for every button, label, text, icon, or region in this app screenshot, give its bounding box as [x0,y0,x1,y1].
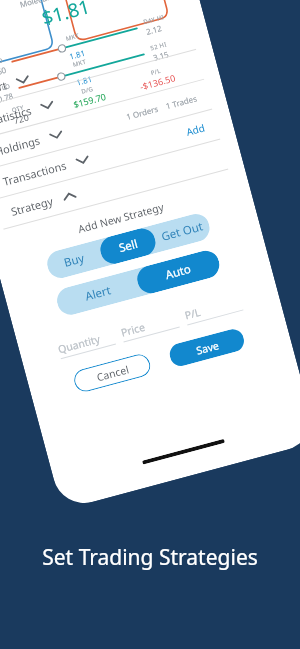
button[interactable]: Buy [44,240,104,281]
button[interactable]: Holdings [0,80,212,169]
staticText: 0.78 [0,90,14,105]
button[interactable]: Auto [134,247,222,296]
staticText: Alert [83,282,113,304]
staticText: Statistics [0,103,33,129]
staticText: -$136.50 [138,71,177,92]
button[interactable]: Statistics [0,50,204,139]
staticText: DAY LO [0,56,4,70]
staticText: 1 Trades [164,92,198,111]
staticText: Moleculin Biotech, Inc. [0,0,175,29]
staticText: $159.70 [72,90,108,110]
staticText: 1.81 [12,32,142,76]
staticText: Get Out [160,218,205,245]
staticText: Cancel [95,362,131,384]
button[interactable]: Sell [97,225,158,267]
staticText: Holdings [0,132,42,159]
staticText: D/G [80,85,94,96]
staticText: Sell [117,236,140,256]
staticText: 1 Orders [125,103,160,122]
staticText: P/L [183,305,202,322]
staticText: Add [185,120,207,139]
button[interactable]: Strategy [0,139,228,229]
staticText: Transactions [1,157,69,189]
staticText: Buy [62,250,86,271]
staticText: DAY HI [142,13,165,26]
staticText: 52 LO [0,82,12,95]
staticText: 1.81 [19,58,149,102]
button[interactable]: Transactions [0,110,220,199]
staticText: MKT [15,43,144,84]
button[interactable]: Get Out [151,211,213,252]
button[interactable]: Alert [54,269,141,318]
staticText: $1.81 [0,0,182,55]
staticText: 52 HI [149,40,168,52]
staticText: Quantity [56,332,102,356]
staticText: Strategy [9,193,55,219]
staticText: Set Trading Strategies [0,543,300,572]
button[interactable]: Save [167,327,247,369]
staticText: Chart [0,77,9,99]
button[interactable]: Cancel [72,352,153,394]
staticText: Price [119,320,147,340]
staticText: MKT [8,16,137,58]
staticText: 3.15 [152,48,170,63]
staticText: P/L [150,67,162,77]
button[interactable]: Chart [0,20,196,109]
staticText: Auto [164,261,193,283]
staticText: Save [195,338,220,358]
staticText: QTY [11,103,25,114]
staticText: 2.12 [145,22,163,37]
staticText: 1.60 [0,64,7,79]
staticText: 720 [12,110,30,126]
staticText: Add New Strategy [6,181,235,255]
